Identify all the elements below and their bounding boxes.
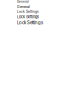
staticText: Lock Settings: [17, 20, 43, 25]
staticText: General: [17, 4, 30, 9]
staticText: Lock Settings: [17, 15, 39, 19]
staticText: Lock Settings: [17, 10, 39, 14]
staticText: General: [17, 0, 29, 3]
